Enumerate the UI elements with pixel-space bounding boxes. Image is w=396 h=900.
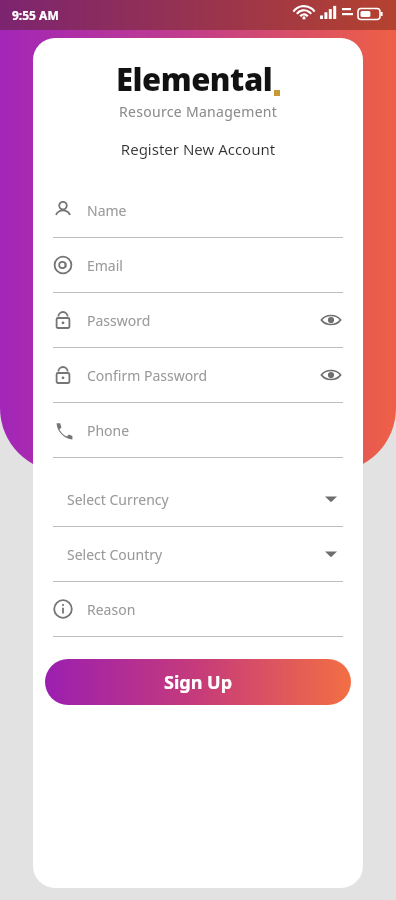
staticText: Email [87,256,343,275]
button[interactable]: Name [33,183,363,238]
button[interactable]: Select Country [33,527,363,582]
staticText: Register New Account [33,139,363,159]
staticText: Name [87,201,343,220]
staticText: Confirm Password [87,366,319,385]
staticText: Select Country [67,545,319,564]
button[interactable]: Email [33,238,363,293]
button[interactable]: Phone [33,403,363,472]
staticText: Password [87,311,319,330]
staticText: Reason [87,600,343,619]
button[interactable]: Open Select Country dropdown [319,542,343,566]
button[interactable]: Reason [33,582,363,637]
staticText: Select Currency [67,490,319,509]
button[interactable]: Select Currency [33,472,363,527]
staticText: Elemental [116,58,273,100]
button[interactable]: Toggle password visibility [319,363,343,387]
staticText: Sign Up [164,670,233,695]
button[interactable]: Password [33,293,363,348]
button[interactable]: Toggle password visibility [319,308,343,332]
button[interactable]: Confirm Password [33,348,363,403]
button[interactable]: Sign Up [45,659,351,705]
staticText: Resource Management [119,102,278,121]
staticText: Phone [87,421,343,440]
button[interactable]: Open Select Currency dropdown [319,487,343,511]
staticText: 9:55 AM [12,7,59,23]
